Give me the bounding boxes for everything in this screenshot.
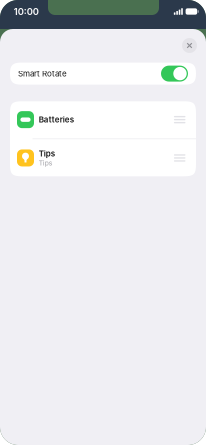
button[interactable]: Smart Rotate (10, 63, 196, 85)
button[interactable]: Close (179, 35, 200, 56)
staticText: Tips (39, 149, 55, 158)
staticText: Tips (39, 159, 53, 167)
staticText: Batteries (39, 115, 74, 124)
button[interactable]: Batteries (10, 101, 196, 138)
staticText: 10:00 (14, 6, 39, 17)
staticText: Smart Rotate (18, 69, 67, 78)
button[interactable]: Tips (10, 139, 196, 177)
